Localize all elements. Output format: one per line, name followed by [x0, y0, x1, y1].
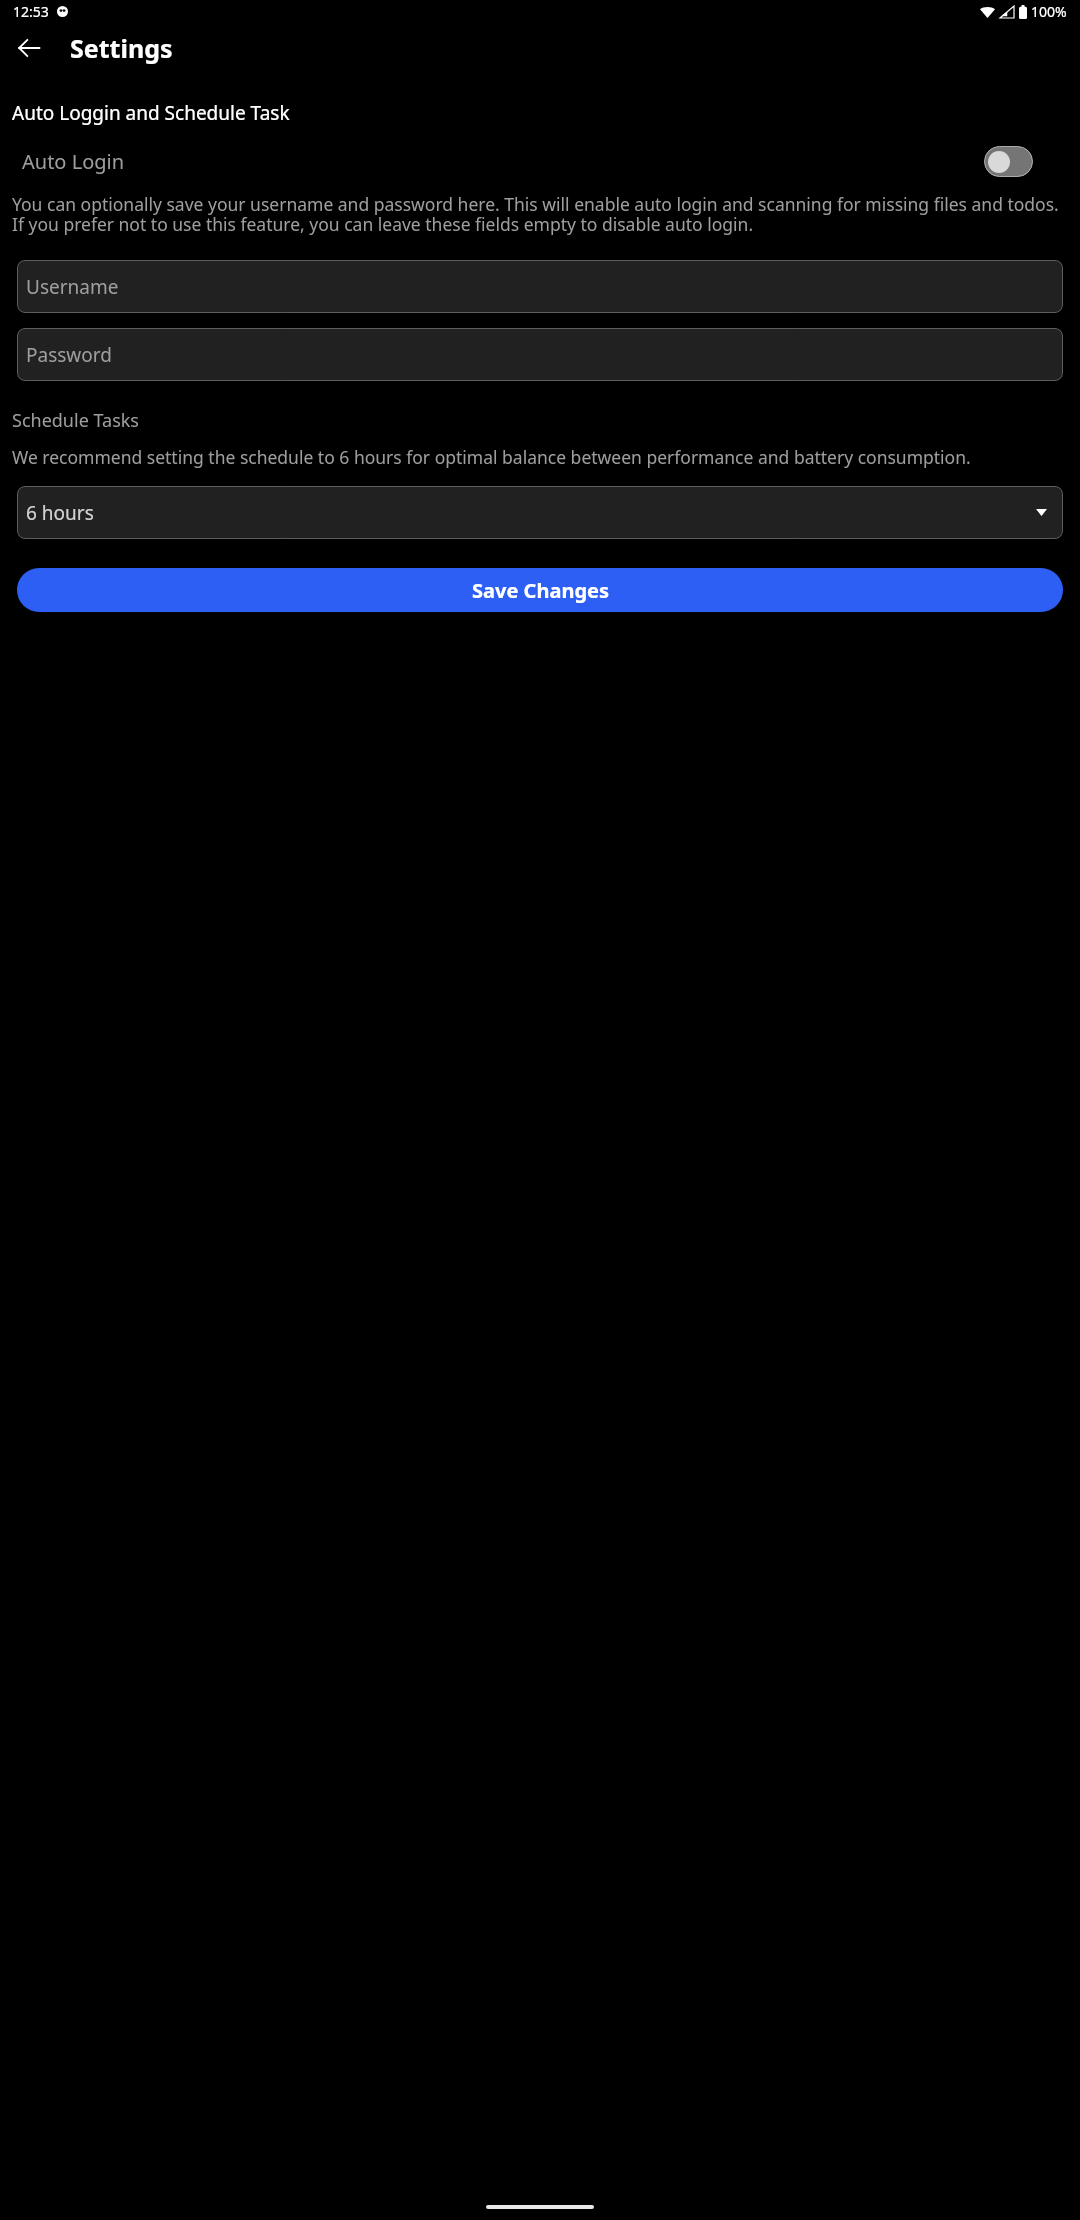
button[interactable]: Save Changes [17, 568, 1063, 612]
staticText: Auto Loggin and Schedule Task [12, 100, 290, 126]
button[interactable]: Auto Login [0, 142, 1080, 180]
staticText: Settings [70, 31, 173, 65]
staticText: 100% [1031, 2, 1067, 21]
staticText: We recommend setting the schedule to 6 h… [12, 445, 1066, 469]
button[interactable]: 6 hours [17, 486, 1063, 539]
staticText: You can optionally save your username an… [12, 192, 1066, 236]
button[interactable]: Auto Login toggle [984, 146, 1033, 177]
staticText: Save Changes [472, 577, 609, 604]
staticText: Schedule Tasks [12, 408, 139, 433]
button[interactable]: Username [17, 260, 1063, 313]
staticText: Auto Login [22, 148, 125, 175]
button[interactable]: Back [5, 24, 53, 72]
staticText: 6 hours [26, 500, 94, 526]
staticText: Username [26, 274, 119, 300]
staticText: Password [26, 342, 112, 368]
staticText: 12:53 [13, 2, 49, 21]
button[interactable]: Password [17, 328, 1063, 381]
